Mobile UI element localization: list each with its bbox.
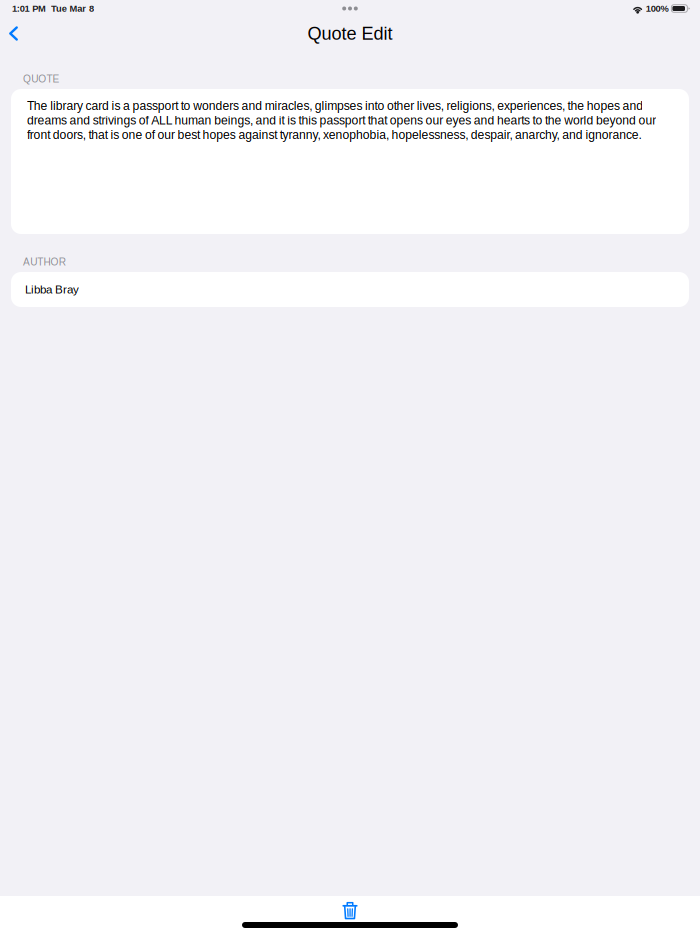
staticText: Tue Mar 8 [51,3,94,14]
staticText: 1:01 PM [12,3,46,14]
staticText: 100% [646,3,668,14]
staticText: Libba Bray [25,283,79,296]
button[interactable]: Libba Bray [0,272,700,307]
button[interactable]: The library card is a passport to wonder… [0,89,700,234]
button[interactable]: Back [1,19,26,48]
staticText: QUOTE [23,73,59,85]
staticText: The library card is a passport to wonder… [27,99,656,142]
staticText: AUTHOR [23,256,66,268]
staticText: Quote Edit [307,23,392,44]
button[interactable]: Delete [322,892,378,919]
